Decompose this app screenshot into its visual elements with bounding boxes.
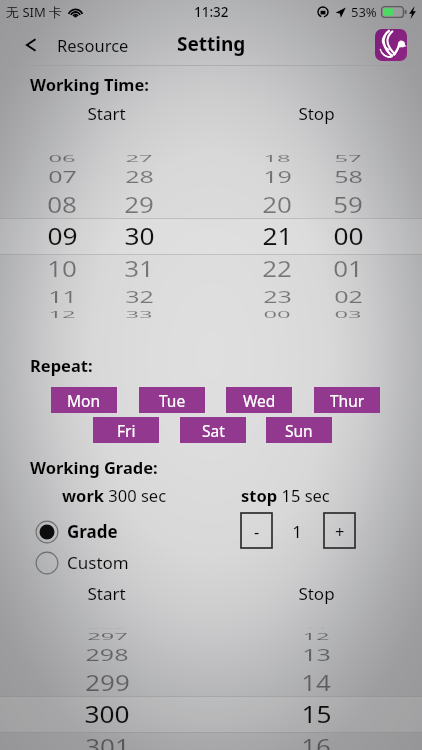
staticText: 06	[48, 152, 76, 164]
button[interactable]: Custom	[35, 549, 129, 577]
staticText: 33	[125, 308, 153, 320]
staticText: work 300 sec	[62, 484, 167, 506]
button[interactable]: Grade	[35, 518, 118, 546]
staticText: 15	[301, 697, 332, 730]
staticText: Start	[87, 102, 126, 125]
staticText: 12	[302, 630, 330, 642]
staticText: 00	[263, 308, 291, 320]
staticText: 03	[334, 308, 362, 320]
staticText: 32	[125, 284, 154, 308]
staticText: 12	[48, 308, 76, 320]
staticText: 08	[47, 189, 77, 219]
staticText: 07	[48, 164, 77, 188]
staticText: Working Grade:	[30, 456, 158, 478]
staticText: 21	[262, 219, 293, 252]
staticText: 31	[124, 253, 154, 283]
staticText: 57	[334, 152, 362, 164]
staticText: Grade	[67, 520, 118, 543]
staticText: 09	[47, 219, 78, 252]
button[interactable]: Fri	[93, 417, 159, 443]
staticText: Tue	[159, 390, 186, 411]
staticText: 53%	[351, 3, 377, 21]
staticText: 01	[333, 253, 363, 283]
button[interactable]: Wed	[226, 387, 292, 413]
staticText: Custom	[67, 551, 129, 574]
staticText: Sat	[202, 420, 225, 441]
button[interactable]: Thur	[314, 387, 380, 413]
button[interactable]: Resource	[0, 29, 143, 61]
staticText: 297	[87, 630, 128, 642]
staticText: Sun	[285, 420, 313, 441]
staticText: 30	[124, 219, 155, 252]
staticText: 27	[125, 152, 153, 164]
staticText: Mon	[67, 390, 101, 411]
staticText: Repeat:	[30, 354, 93, 376]
staticText: 14	[301, 667, 331, 697]
staticText: 22	[262, 253, 292, 283]
staticText: Stop	[298, 102, 335, 125]
staticText: 18	[263, 152, 291, 164]
staticText: Thur	[330, 390, 365, 411]
button[interactable]: App logo	[375, 29, 407, 61]
staticText: Working Time:	[30, 73, 149, 95]
staticText: 298	[85, 642, 129, 666]
staticText: 1	[292, 520, 302, 543]
staticText: +	[335, 520, 345, 542]
staticText: 299	[85, 667, 130, 697]
staticText: 28	[125, 164, 154, 188]
staticText: 无 SIM 卡	[6, 3, 63, 21]
staticText: 301	[85, 731, 130, 750]
staticText: Fri	[117, 420, 136, 441]
staticText: 59	[333, 189, 363, 219]
staticText: 13	[302, 642, 331, 666]
staticText: 11:32	[194, 3, 229, 21]
staticText: 58	[334, 164, 363, 188]
staticText: Wed	[243, 390, 276, 411]
staticText: 00	[333, 219, 364, 252]
button[interactable]: Tue	[139, 387, 205, 413]
staticText: 16	[301, 731, 331, 750]
staticText: -	[254, 520, 260, 542]
button[interactable]: Increase	[324, 513, 355, 548]
button[interactable]: Decrease	[241, 513, 272, 548]
staticText: Stop	[298, 582, 335, 605]
button[interactable]: Sat	[180, 417, 246, 443]
staticText: 29	[124, 189, 154, 219]
staticText: 02	[334, 284, 363, 308]
staticText: 300	[84, 697, 130, 730]
staticText: Start	[87, 582, 126, 605]
staticText: 20	[262, 189, 292, 219]
staticText: Setting	[177, 31, 246, 57]
staticText: Resource	[57, 34, 129, 56]
staticText: stop 15 sec	[241, 484, 330, 506]
staticText: 23	[263, 284, 292, 308]
staticText: 10	[47, 253, 77, 283]
staticText: 11	[48, 284, 77, 308]
button[interactable]: Mon	[51, 387, 117, 413]
button[interactable]: Sun	[266, 417, 332, 443]
staticText: 19	[263, 164, 292, 188]
